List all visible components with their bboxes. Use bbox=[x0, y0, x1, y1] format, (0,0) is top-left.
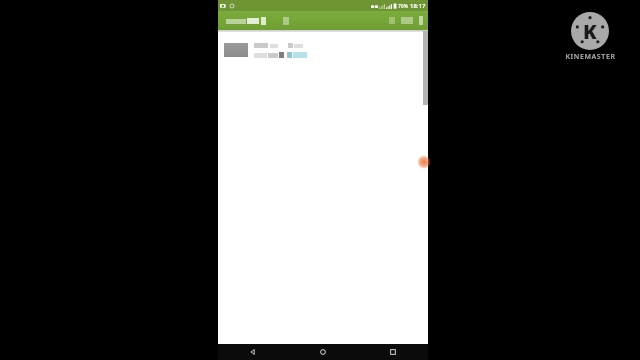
button[interactable]: Search bbox=[226, 17, 266, 25]
staticText: K bbox=[583, 18, 597, 45]
button[interactable]: Home bbox=[288, 344, 358, 360]
button[interactable]: Back bbox=[218, 344, 288, 360]
staticText: 70% bbox=[398, 3, 408, 10]
button[interactable] bbox=[218, 37, 428, 63]
button[interactable]: Recent apps bbox=[358, 344, 428, 360]
staticText: KINEMASTER bbox=[565, 52, 616, 62]
staticText: 18:17 bbox=[410, 2, 426, 10]
